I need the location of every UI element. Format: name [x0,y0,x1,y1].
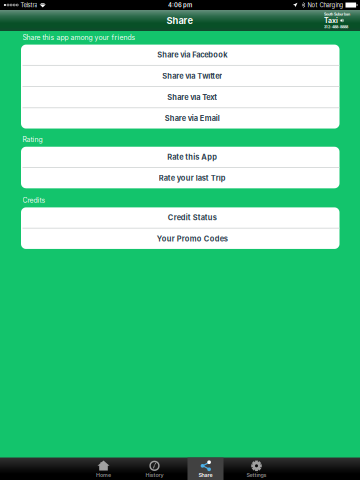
staticText: South Suburban [324,12,350,16]
staticText: Rate this App [167,152,217,161]
staticText: Not Charging [305,1,345,9]
button[interactable]: Share via Email [21,108,339,129]
staticText: Home [96,472,111,478]
staticText: Share via Email [165,114,220,123]
button[interactable]: Rate this App [21,147,339,167]
staticText: Share via Twitter [162,71,222,80]
button[interactable]: Home [85,457,121,480]
button[interactable]: History [136,457,172,480]
staticText: Share [198,472,212,478]
staticText: Share [166,15,193,26]
staticText: 312-488-8888 [324,25,348,29]
button[interactable]: Share via Text [21,87,339,107]
button[interactable]: Share via Facebook [21,45,339,65]
staticText: History [145,472,163,478]
staticText: Share via Text [167,93,217,102]
button[interactable]: Settings [238,457,274,480]
staticText: Taxi [324,16,338,25]
staticText: Settings [246,472,266,478]
staticText: Credits [22,196,45,204]
staticText: Your Promo Codes [157,234,228,243]
staticText: Telstra [18,1,39,9]
button[interactable]: Share [187,457,223,480]
staticText: Credit Status [168,213,217,222]
staticText: Share this app among your friends [22,33,135,42]
staticText: 4:06 pm [168,1,192,9]
staticText: Rating [22,135,42,144]
button[interactable]: Share via Twitter [21,66,339,86]
button[interactable]: Credit Status [21,207,339,228]
button[interactable]: Your Promo Codes [21,229,339,249]
staticText: Share via Facebook [157,50,227,59]
button[interactable]: Rate your last Trip [21,168,339,188]
staticText: Rate your last Trip [159,174,226,183]
